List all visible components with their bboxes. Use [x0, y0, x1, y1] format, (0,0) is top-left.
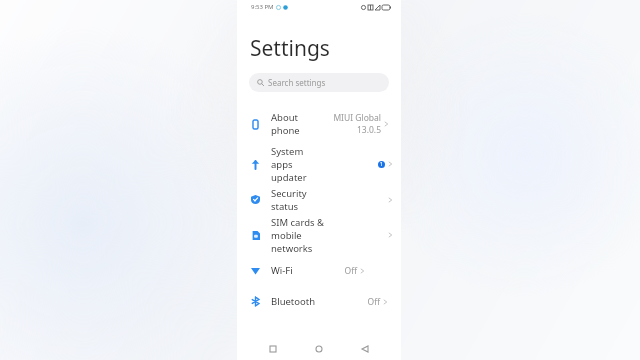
button[interactable]: Search settings [249, 73, 389, 92]
staticText: System apps updater [271, 145, 324, 184]
staticText: Off [367, 296, 380, 308]
staticText: Settings [250, 34, 330, 63]
button[interactable]: Bluetooth [237, 286, 401, 317]
staticText: MIUI Global 13.0.5 [333, 112, 381, 136]
staticText: 1 [380, 161, 383, 168]
staticText: 9:53 PM [251, 3, 274, 11]
staticText: SIM cards & mobile networks [271, 216, 329, 255]
button[interactable]: About phone [237, 104, 401, 144]
staticText: Security status [271, 187, 329, 213]
button[interactable]: Wi-Fi [237, 255, 401, 286]
staticText: Wi-Fi [271, 264, 293, 277]
staticText: Search settings [268, 77, 326, 88]
button[interactable]: Security status [237, 184, 401, 215]
staticText: Bluetooth [271, 295, 316, 308]
button[interactable]: Recent apps [263, 339, 283, 359]
staticText: About phone [271, 111, 300, 137]
staticText: Off [344, 265, 357, 277]
button[interactable]: System apps updater [237, 144, 401, 184]
button[interactable]: Home [309, 339, 329, 359]
button[interactable]: SIM cards & mobile networks [237, 215, 401, 255]
button[interactable]: Back [355, 339, 375, 359]
